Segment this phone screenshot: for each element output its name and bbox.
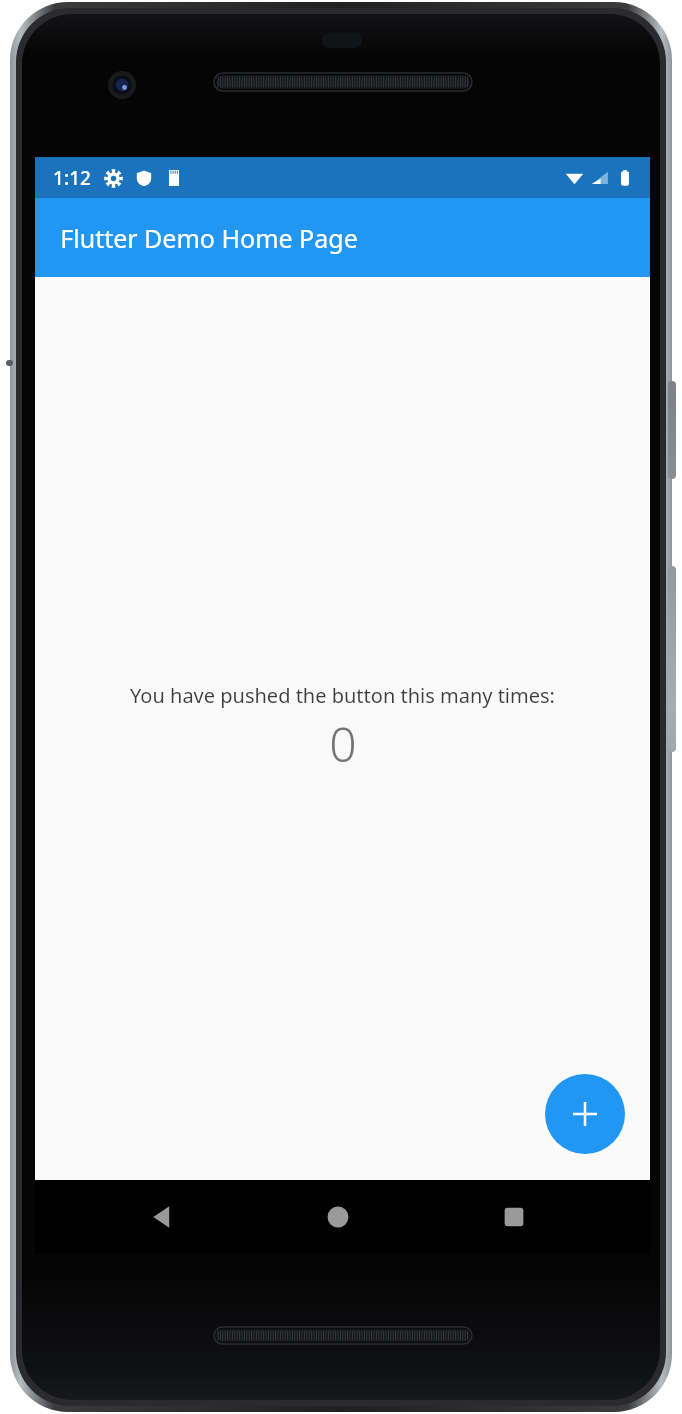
button[interactable]: Back	[140, 1195, 184, 1239]
staticText: You have pushed the button this many tim…	[130, 682, 555, 709]
staticText: 0	[329, 711, 357, 776]
button[interactable]: Recent apps	[492, 1195, 536, 1239]
staticText: Flutter Demo Home Page	[60, 221, 358, 255]
staticText: 1:12	[53, 165, 91, 191]
button[interactable]: Increment	[545, 1074, 625, 1154]
button[interactable]: Home	[316, 1195, 360, 1239]
